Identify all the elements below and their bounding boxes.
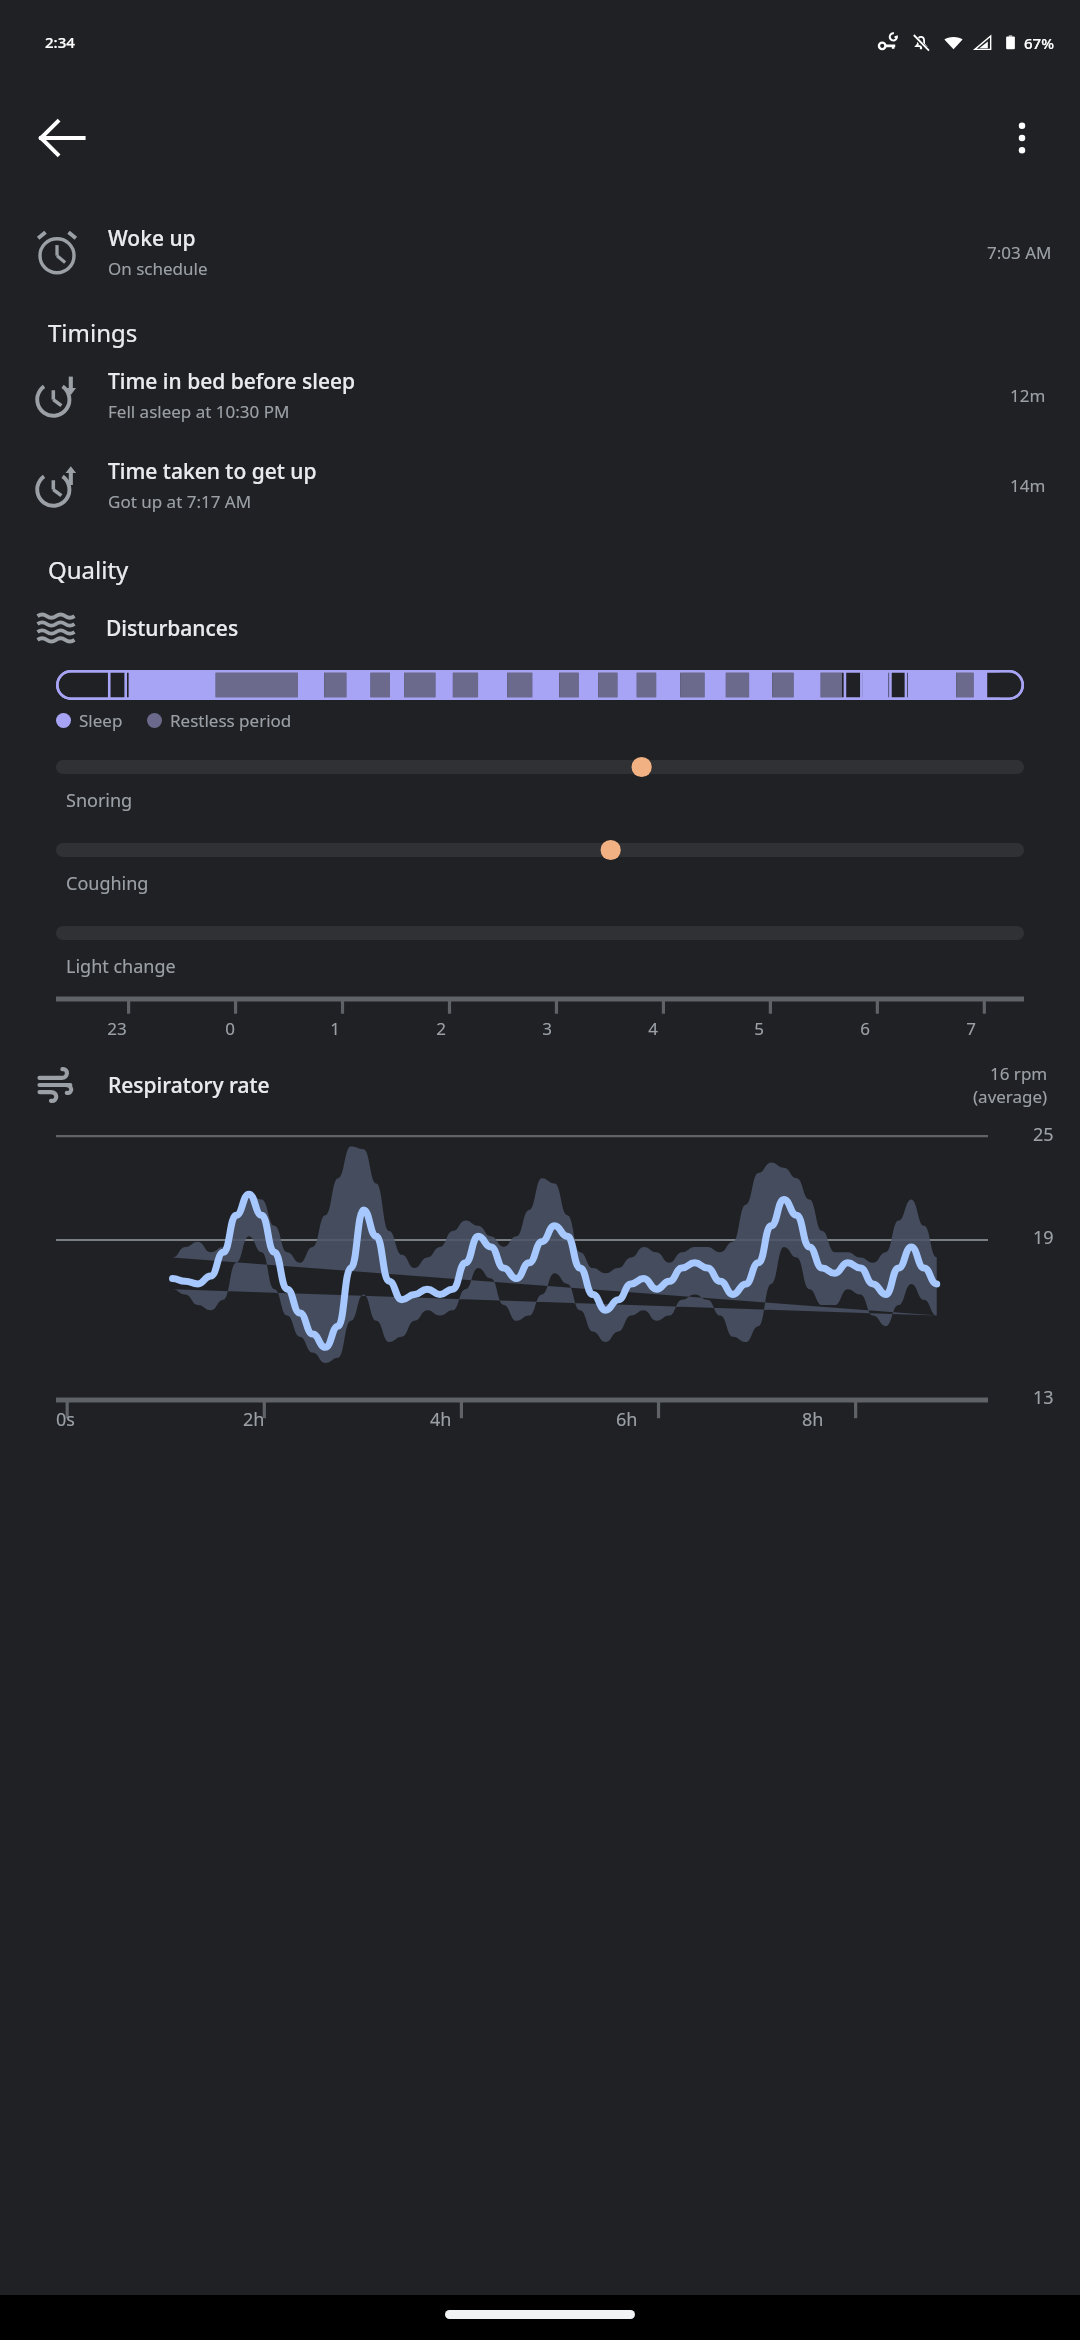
staticText: Restless period	[170, 709, 292, 732]
staticText: 6h	[616, 1407, 638, 1432]
staticText: 23	[107, 1017, 127, 1040]
button[interactable]: Time in bed before sleep	[0, 359, 1080, 431]
button[interactable]	[56, 670, 1024, 700]
button[interactable]: Woke up	[0, 218, 1080, 286]
staticText: On schedule	[108, 257, 208, 280]
staticText: 3	[542, 1017, 552, 1040]
staticText: Snoring	[66, 788, 133, 813]
staticText: Timings	[48, 316, 138, 349]
staticText: 25	[1033, 1122, 1054, 1147]
button[interactable]: Light change	[0, 908, 1080, 991]
staticText: 12m	[1010, 384, 1046, 407]
staticText: 0s	[56, 1407, 75, 1432]
staticText: Respiratory rate	[108, 1071, 973, 1100]
staticText: 19	[1033, 1225, 1054, 1250]
staticText: 67%	[1024, 33, 1054, 53]
staticText: 4	[648, 1017, 658, 1040]
staticText: 7	[966, 1017, 976, 1040]
staticText: (average)	[973, 1085, 1048, 1108]
staticText: Got up at 7:17 AM	[108, 490, 252, 513]
staticText: Coughing	[66, 871, 149, 896]
staticText: Time taken to get up	[108, 457, 317, 486]
staticText: 0	[225, 1017, 235, 1040]
staticText: 5	[754, 1017, 764, 1040]
button[interactable]: Time taken to get up	[0, 449, 1080, 521]
staticText: 1	[330, 1017, 340, 1040]
button[interactable]: Respiratory rate	[0, 1062, 1080, 1108]
staticText: 13	[1033, 1385, 1054, 1410]
staticText: Sleep	[79, 709, 123, 732]
staticText: Fell asleep at 10:30 PM	[108, 400, 290, 423]
staticText: 6	[860, 1017, 870, 1040]
staticText: 2h	[243, 1407, 265, 1432]
button[interactable]: Snoring	[0, 742, 1080, 825]
staticText: Light change	[66, 954, 176, 979]
staticText: Time in bed before sleep	[108, 367, 356, 396]
button[interactable]: More options	[986, 102, 1058, 174]
button[interactable]: Back	[26, 102, 98, 174]
staticText: 14m	[1010, 474, 1046, 497]
staticText: 2:34	[45, 32, 75, 52]
staticText: Quality	[48, 553, 129, 586]
button[interactable]: Disturbances	[0, 600, 1080, 656]
staticText: Disturbances	[106, 614, 239, 643]
staticText: 7:03 AM	[987, 241, 1052, 264]
staticText: 2	[436, 1017, 446, 1040]
staticText: 16 rpm	[990, 1062, 1048, 1085]
button[interactable]: Coughing	[0, 825, 1080, 908]
staticText: 8h	[802, 1407, 824, 1432]
staticText: 4h	[430, 1407, 452, 1432]
staticText: Woke up	[108, 224, 196, 253]
